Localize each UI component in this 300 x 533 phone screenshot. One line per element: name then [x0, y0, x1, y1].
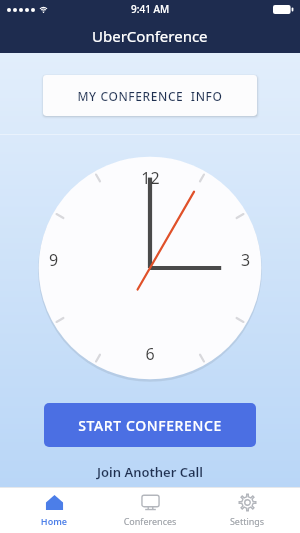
- staticText: Conferences: [107, 515, 193, 527]
- staticText: START CONFERENCE: [78, 416, 222, 435]
- staticText: 9:41 AM: [131, 2, 170, 16]
- staticText: Settings: [204, 515, 290, 527]
- staticText: 3: [241, 249, 251, 271]
- button[interactable]: Home: [11, 493, 97, 527]
- staticText: Join Another Call: [0, 463, 300, 481]
- staticText: Home: [11, 515, 97, 527]
- button[interactable]: Conferences: [107, 493, 193, 527]
- button[interactable]: Settings: [204, 493, 290, 527]
- button[interactable]: START CONFERENCE: [44, 403, 256, 447]
- button[interactable]: MY CONFERENCE INFO: [43, 75, 257, 116]
- staticText: UberConference: [92, 26, 208, 46]
- staticText: 9: [49, 249, 59, 271]
- staticText: 12: [141, 167, 160, 189]
- staticText: MY CONFERENCE INFO: [77, 88, 223, 104]
- staticText: 6: [145, 343, 155, 365]
